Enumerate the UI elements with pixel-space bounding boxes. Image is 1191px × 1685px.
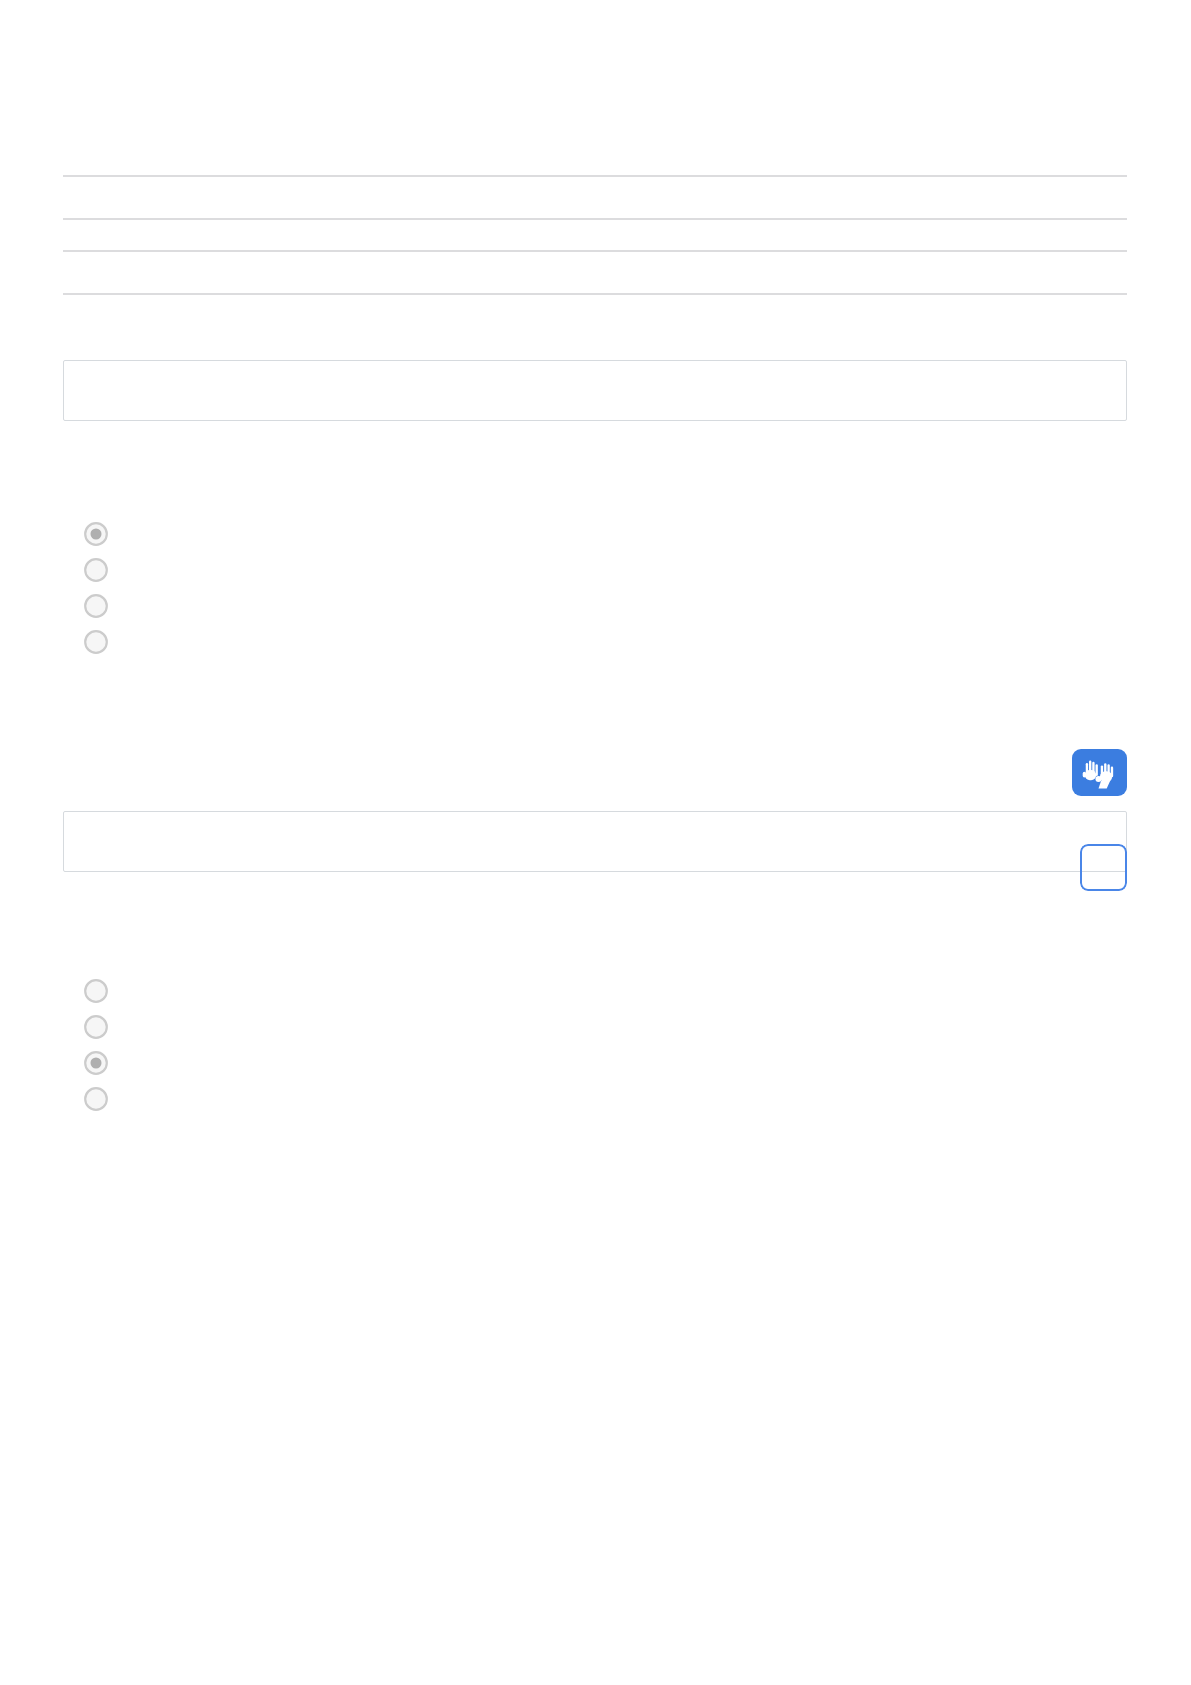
button[interactable]: Sign language <box>1072 749 1127 796</box>
button[interactable]: Selected option <box>0 1051 1191 1075</box>
button[interactable]: Option <box>0 630 1191 654</box>
button[interactable]: Selected option <box>0 522 1191 546</box>
button[interactable]: Resize handle <box>1080 844 1127 891</box>
button[interactable] <box>63 360 1127 421</box>
button[interactable] <box>63 811 1127 872</box>
button[interactable]: Option <box>0 1087 1191 1111</box>
button[interactable]: Option <box>0 1015 1191 1039</box>
button[interactable]: Option <box>0 979 1191 1003</box>
button[interactable]: Option <box>0 558 1191 582</box>
button[interactable]: Option <box>0 594 1191 618</box>
